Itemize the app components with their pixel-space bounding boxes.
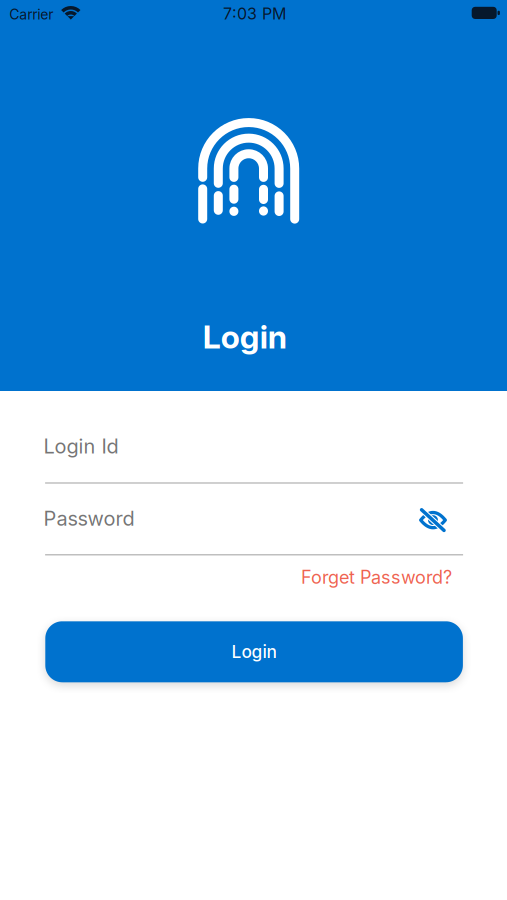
button[interactable]: Forget Password? bbox=[301, 566, 452, 588]
staticText: Login bbox=[203, 317, 287, 356]
staticText: Login bbox=[232, 641, 277, 662]
staticText: Carrier bbox=[9, 6, 53, 23]
button[interactable]: Login bbox=[45, 621, 463, 682]
staticText: Password bbox=[43, 506, 134, 531]
staticText: Forget Password? bbox=[301, 566, 452, 588]
staticText: 7:03 PM bbox=[223, 4, 286, 23]
button[interactable]: Show password bbox=[419, 509, 447, 532]
staticText: Login Id bbox=[43, 434, 118, 458]
